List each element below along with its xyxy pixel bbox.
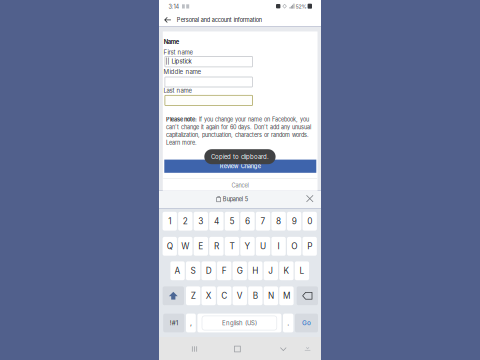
staticText: W (181, 241, 189, 251)
button[interactable]: 3 (194, 212, 208, 231)
button[interactable]: V (233, 286, 247, 305)
staticText: C (221, 291, 227, 301)
button[interactable]: J (264, 261, 278, 280)
button[interactable]: , (186, 314, 196, 332)
button[interactable]: Text field (165, 56, 252, 67)
staticText: 0 (307, 216, 312, 226)
staticText: || Lipstick (166, 58, 192, 65)
staticText: M (283, 291, 290, 301)
button[interactable]: X (202, 286, 216, 305)
button[interactable]: H (248, 261, 262, 280)
button[interactable]: U (256, 237, 270, 256)
button[interactable]: 6 (240, 212, 255, 231)
staticText: 7 (261, 216, 266, 226)
button[interactable]: 8 (271, 212, 286, 231)
staticText: can't change it again for 60 days. Don't… (166, 124, 311, 131)
staticText: 6 (245, 216, 250, 226)
button[interactable]: I (271, 237, 286, 256)
staticText: I (278, 241, 280, 251)
staticText: Bupanel 5 (223, 196, 248, 203)
button[interactable]: N (264, 286, 278, 305)
button[interactable]: L (295, 261, 309, 280)
button[interactable]: Recent apps (187, 342, 201, 356)
button[interactable]: A (170, 261, 185, 280)
button[interactable]: W (178, 237, 192, 256)
staticText: O (291, 241, 297, 251)
button[interactable]: O (287, 237, 301, 256)
staticText: N (268, 291, 274, 301)
staticText: Middle name (164, 68, 202, 75)
button[interactable]: Dismiss clipboard suggestion (304, 193, 316, 205)
button[interactable]: R (209, 237, 223, 256)
staticText: S (191, 266, 196, 276)
button[interactable]: Back (276, 342, 290, 356)
staticText: H (252, 266, 258, 276)
staticText: Name (164, 38, 179, 45)
staticText: !#1 (170, 319, 178, 327)
button[interactable]: Back (161, 13, 175, 27)
button[interactable]: Home (230, 342, 244, 356)
button[interactable]: !#1 (163, 314, 184, 332)
staticText: Cancel (231, 182, 248, 189)
button[interactable]: Text field (165, 95, 252, 105)
button[interactable]: 2 (178, 212, 192, 231)
staticText: J (268, 266, 273, 276)
button[interactable]: Review Change (164, 160, 316, 173)
button[interactable]: F (217, 261, 231, 280)
staticText: 5 (229, 216, 234, 226)
staticText: Q (167, 241, 173, 251)
staticText: G (237, 266, 243, 276)
staticText: L (299, 266, 304, 276)
staticText: . (287, 319, 289, 327)
staticText: 2 (183, 216, 188, 226)
button[interactable]: Y (240, 237, 255, 256)
button[interactable]: K (279, 261, 293, 280)
staticText: Y (244, 241, 250, 251)
staticText: B (253, 291, 258, 301)
button[interactable]: 1 (163, 212, 177, 231)
button[interactable]: S (186, 261, 200, 280)
staticText: P (307, 241, 312, 251)
staticText: A (175, 266, 181, 276)
button[interactable]: Backspace (297, 286, 318, 305)
staticText: English (US) (222, 319, 257, 327)
staticText: Last name (164, 87, 192, 94)
staticText: If you change your name on Facebook, you (197, 116, 309, 123)
staticText: , (190, 319, 192, 327)
button[interactable]: D (201, 261, 216, 280)
button[interactable]: Bupanel 5 (210, 194, 254, 204)
staticText: Please note: (166, 116, 197, 123)
staticText: 1 (168, 216, 171, 226)
staticText: Review Change (220, 163, 261, 170)
button[interactable]: Z (186, 286, 200, 305)
button[interactable]: B (248, 286, 262, 305)
staticText: Personal and account information (177, 16, 262, 23)
button[interactable]: M (279, 286, 294, 305)
staticText: Z (191, 291, 196, 301)
staticText: Copied to clipboard. (211, 153, 269, 160)
staticText: 9 (292, 216, 297, 226)
button[interactable]: Hide keyboard (302, 343, 314, 355)
button[interactable]: E (194, 237, 208, 256)
button[interactable]: Text field (165, 77, 252, 87)
button[interactable]: Q (163, 237, 177, 256)
button[interactable]: T (225, 237, 239, 256)
staticText: capitalization, punctuation, characters … (166, 132, 309, 138)
button[interactable]: 0 (303, 212, 317, 231)
staticText: 4 (214, 216, 219, 226)
staticText: R (214, 241, 219, 251)
button[interactable]: G (233, 261, 247, 280)
button[interactable]: C (217, 286, 231, 305)
button[interactable]: 5 (225, 212, 239, 231)
button[interactable]: Shift (163, 286, 184, 305)
button[interactable]: 9 (287, 212, 301, 231)
button[interactable]: 7 (256, 212, 270, 231)
staticText: E (198, 241, 203, 251)
button[interactable]: Go (295, 314, 318, 332)
button[interactable]: . (283, 314, 293, 332)
button[interactable]: Space, English (US) (197, 314, 281, 332)
staticText: K (283, 266, 289, 276)
button[interactable]: 4 (209, 212, 223, 231)
button[interactable]: Cancel (210, 180, 270, 191)
button[interactable]: P (303, 237, 317, 256)
